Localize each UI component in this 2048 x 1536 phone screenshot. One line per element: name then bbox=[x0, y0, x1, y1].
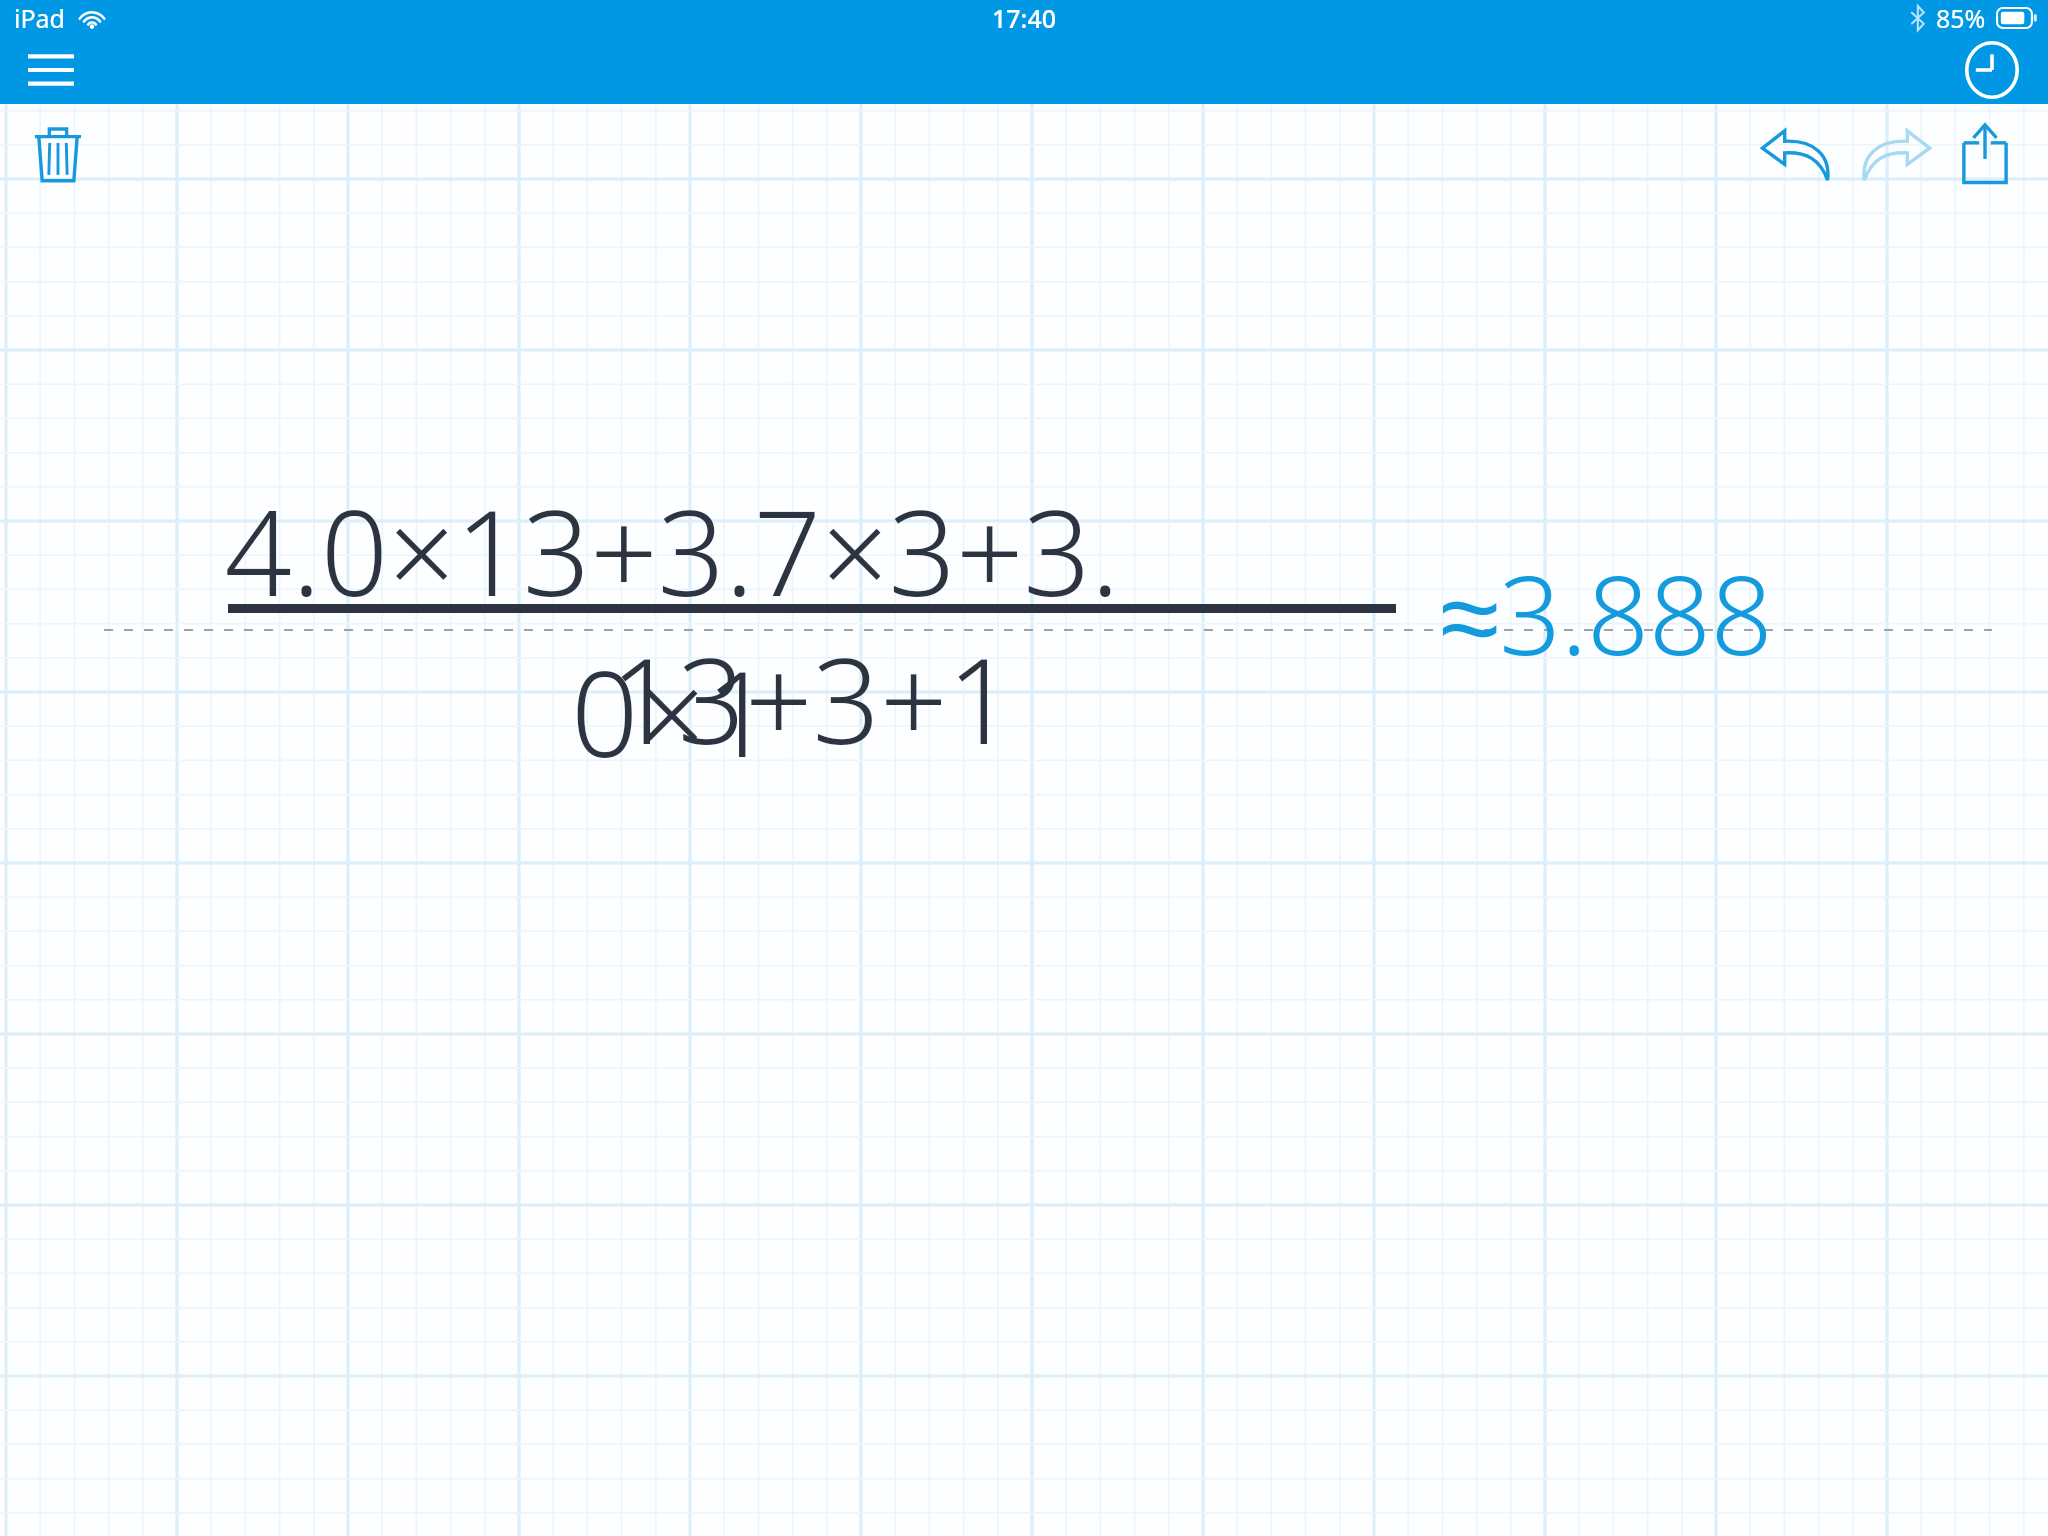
staticText: 13+3+1 bbox=[610, 618, 1015, 779]
button[interactable]: Share bbox=[1942, 112, 2028, 196]
staticText: 4.0×13+3.7×3+3.0×1 bbox=[222, 470, 1122, 792]
staticText: ≈3.888 bbox=[1440, 540, 1773, 687]
staticText: 85% bbox=[1936, 1, 1986, 35]
button[interactable]: Delete bbox=[20, 112, 96, 196]
staticText: 17:40 bbox=[992, 1, 1057, 35]
staticText: iPad bbox=[14, 1, 65, 35]
button[interactable]: Redo bbox=[1846, 112, 1942, 196]
button[interactable]: History bbox=[1956, 38, 2028, 102]
button[interactable]: Undo bbox=[1750, 112, 1846, 196]
button[interactable]: Menu bbox=[18, 43, 84, 97]
